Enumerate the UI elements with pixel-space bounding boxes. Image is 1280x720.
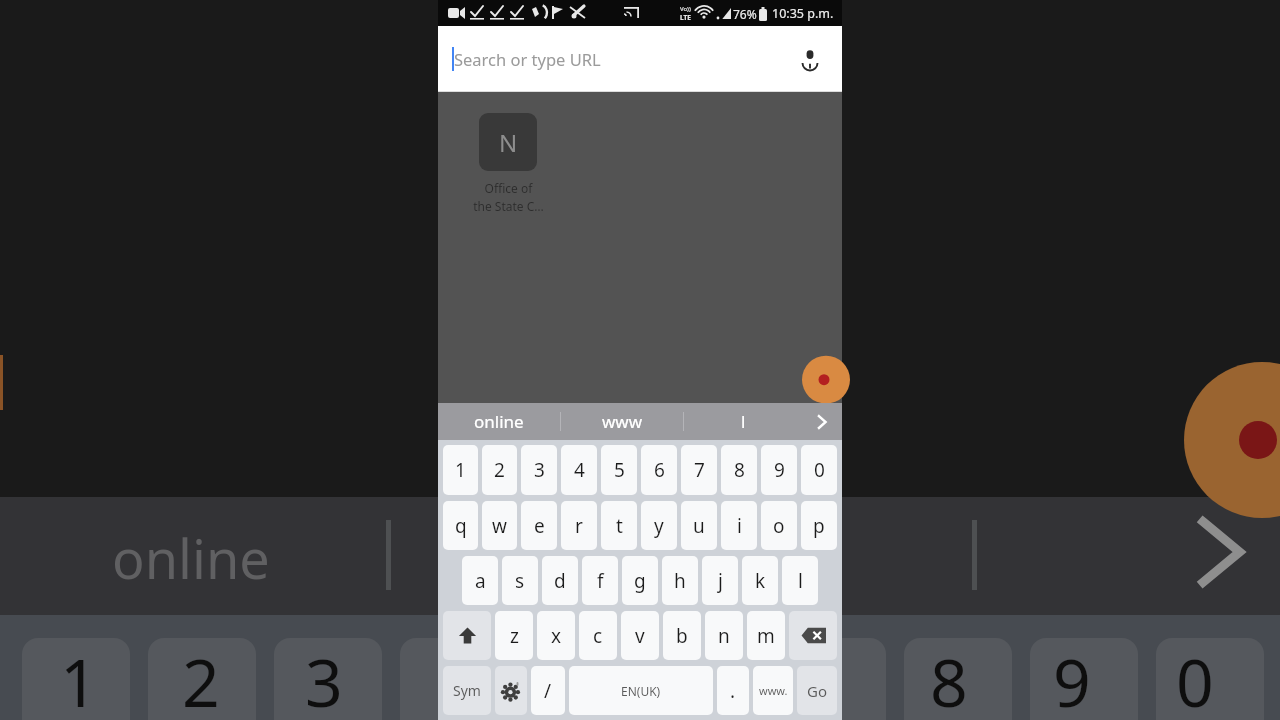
- staticText: k: [755, 568, 766, 594]
- button[interactable]: 1: [443, 445, 478, 495]
- staticText: 0: [814, 457, 825, 483]
- button[interactable]: Sym: [443, 666, 491, 715]
- staticText: .: [730, 678, 736, 704]
- staticText: x: [551, 623, 562, 649]
- button[interactable]: 2: [482, 445, 517, 495]
- button[interactable]: u: [681, 501, 717, 550]
- staticText: 0: [1176, 636, 1214, 720]
- staticText: f: [597, 568, 604, 594]
- staticText: l: [798, 568, 803, 594]
- staticText: 8: [930, 636, 968, 720]
- button[interactable]: Voice search: [790, 39, 830, 79]
- button[interactable]: www.: [753, 666, 793, 715]
- button[interactable]: Shift: [443, 611, 491, 660]
- button[interactable]: l: [684, 403, 802, 440]
- button[interactable]: 4: [561, 445, 597, 495]
- button[interactable]: c: [579, 611, 617, 660]
- button[interactable]: e: [521, 501, 557, 550]
- button[interactable]: m: [747, 611, 785, 660]
- button[interactable]: b: [663, 611, 701, 660]
- staticText: e: [534, 513, 545, 539]
- button[interactable]: s: [502, 556, 538, 605]
- staticText: o: [773, 513, 785, 539]
- staticText: 2: [494, 457, 505, 483]
- button[interactable]: h: [662, 556, 698, 605]
- staticText: s: [515, 568, 525, 594]
- staticText: g: [634, 568, 646, 594]
- staticText: a: [475, 568, 486, 594]
- button[interactable]: www: [561, 403, 683, 440]
- staticText: v: [635, 623, 645, 649]
- button[interactable]: q: [443, 501, 478, 550]
- button[interactable]: Space: [569, 666, 713, 715]
- button[interactable]: 8: [721, 445, 757, 495]
- staticText: www: [602, 410, 643, 433]
- staticText: 5: [614, 457, 625, 483]
- button[interactable]: Go: [797, 666, 837, 715]
- button[interactable]: o: [761, 501, 797, 550]
- staticText: m: [757, 623, 775, 649]
- button[interactable]: l: [782, 556, 818, 605]
- button[interactable]: Settings: [495, 666, 527, 715]
- button[interactable]: 7: [681, 445, 717, 495]
- staticText: n: [718, 623, 730, 649]
- button[interactable]: d: [542, 556, 578, 605]
- button[interactable]: 3: [521, 445, 557, 495]
- button[interactable]: r: [561, 501, 597, 550]
- staticText: z: [510, 623, 519, 649]
- button[interactable]: k: [742, 556, 778, 605]
- staticText: Search or type URL: [454, 48, 601, 70]
- button[interactable]: z: [495, 611, 533, 660]
- staticText: y: [654, 513, 664, 539]
- button[interactable]: i: [721, 501, 757, 550]
- staticText: 1: [455, 457, 466, 483]
- staticText: 6: [654, 457, 665, 483]
- staticText: Vo)): [680, 5, 691, 13]
- button[interactable]: 0: [801, 445, 837, 495]
- staticText: b: [676, 623, 688, 649]
- staticText: j: [718, 568, 723, 594]
- button[interactable]: x: [537, 611, 575, 660]
- button[interactable]: v: [621, 611, 659, 660]
- button[interactable]: 9: [761, 445, 797, 495]
- staticText: 3: [534, 457, 545, 483]
- button[interactable]: f: [582, 556, 618, 605]
- button[interactable]: .: [717, 666, 749, 715]
- button[interactable]: n: [705, 611, 743, 660]
- button[interactable]: More suggestions: [802, 403, 842, 440]
- staticText: q: [455, 513, 467, 539]
- staticText: t: [616, 513, 623, 539]
- button[interactable]: /: [531, 666, 565, 715]
- button[interactable]: N: [479, 113, 537, 171]
- staticText: 1: [60, 636, 98, 720]
- button[interactable]: w: [482, 501, 517, 550]
- button[interactable]: p: [801, 501, 837, 550]
- staticText: 7: [694, 457, 705, 483]
- staticText: 8: [734, 457, 745, 483]
- staticText: i: [737, 513, 742, 539]
- button[interactable]: t: [601, 501, 637, 550]
- staticText: c: [593, 623, 603, 649]
- button[interactable]: g: [622, 556, 658, 605]
- staticText: 2: [182, 636, 220, 720]
- staticText: N: [499, 126, 518, 159]
- staticText: www.: [759, 683, 788, 698]
- button[interactable]: j: [702, 556, 738, 605]
- staticText: /: [544, 678, 552, 704]
- button[interactable]: Search or type URL: [438, 26, 842, 92]
- staticText: w: [492, 513, 507, 539]
- staticText: 9: [1053, 636, 1091, 720]
- button[interactable]: online: [438, 403, 560, 440]
- button[interactable]: 5: [601, 445, 637, 495]
- staticText: 4: [574, 457, 585, 483]
- staticText: d: [554, 568, 566, 594]
- button[interactable]: y: [641, 501, 677, 550]
- staticText: h: [674, 568, 686, 594]
- button[interactable]: Backspace: [789, 611, 837, 660]
- staticText: 76%: [733, 6, 757, 22]
- button[interactable]: 6: [641, 445, 677, 495]
- staticText: 9: [774, 457, 785, 483]
- staticText: u: [693, 513, 705, 539]
- staticText: online: [474, 410, 524, 433]
- button[interactable]: a: [462, 556, 498, 605]
